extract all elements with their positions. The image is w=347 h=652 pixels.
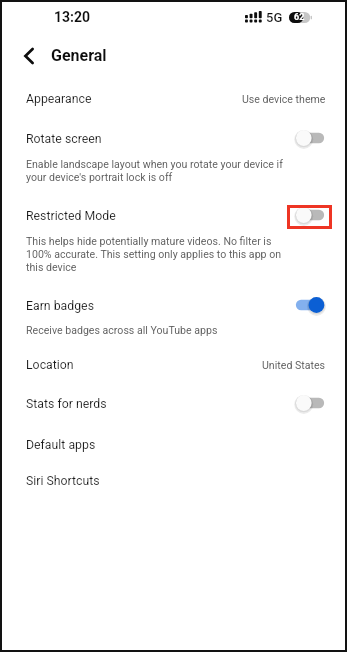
staticText: This helps hide potentially mature video… <box>26 235 292 274</box>
button[interactable]: Back <box>13 40 45 72</box>
staticText: Siri Shortcuts <box>26 474 100 488</box>
button[interactable]: Location <box>0 345 347 384</box>
button[interactable]: Rotate screen <box>0 119 347 158</box>
staticText: 13:20 <box>54 9 91 25</box>
button[interactable]: Default apps <box>0 425 347 464</box>
staticText: 5G <box>266 10 283 25</box>
staticText: Rotate screen <box>26 132 102 146</box>
button[interactable]: Toggle <box>288 293 332 317</box>
staticText: Stats for nerds <box>26 397 107 411</box>
button[interactable]: Siri Shortcuts <box>0 461 347 500</box>
staticText: Earn badges <box>26 299 94 313</box>
staticText: Appearance <box>26 92 92 106</box>
staticText: Restricted Mode <box>26 209 116 223</box>
staticText: 62 <box>294 12 305 23</box>
staticText: General <box>51 46 107 65</box>
staticText: Default apps <box>26 438 96 452</box>
button[interactable]: Appearance <box>0 79 347 118</box>
staticText: Receive badges across all YouTube apps <box>26 324 292 336</box>
staticText: Enable landscape layout when you rotate … <box>26 158 288 184</box>
button[interactable]: Stats for nerds <box>0 384 347 423</box>
button[interactable]: Toggle <box>288 126 332 150</box>
button[interactable]: Restricted Mode <box>0 196 347 235</box>
staticText: Use device theme <box>242 93 326 105</box>
button[interactable]: Earn badges <box>0 286 347 325</box>
button[interactable]: Toggle <box>288 203 332 227</box>
staticText: United States <box>262 359 326 371</box>
staticText: Location <box>26 358 74 372</box>
button[interactable]: Toggle <box>288 391 332 415</box>
